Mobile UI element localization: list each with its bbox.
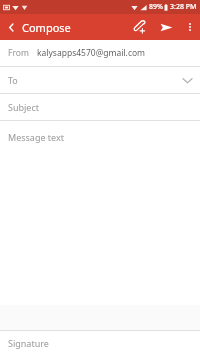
staticText: kalysapps4570@gmail.com: [37, 47, 146, 59]
staticText: Signature: [8, 337, 49, 349]
button[interactable]: Send: [152, 14, 180, 40]
staticText: Compose: [22, 20, 71, 35]
staticText: From: [8, 47, 29, 59]
button[interactable]: From: [0, 40, 200, 66]
button[interactable]: Signature: [0, 331, 200, 355]
staticText: To: [8, 74, 18, 86]
button[interactable]: More options: [180, 14, 200, 40]
staticText: 89%: [149, 2, 163, 12]
staticText: Subject: [8, 101, 40, 113]
button[interactable]: Expand recipients: [180, 73, 194, 87]
button[interactable]: To: [0, 67, 200, 93]
button[interactable]: Back: [0, 14, 22, 40]
staticText: Message text: [8, 131, 65, 143]
button[interactable]: Subject: [0, 94, 200, 120]
staticText: 3:28 PM: [170, 2, 197, 12]
button[interactable]: Message text: [0, 121, 200, 305]
button[interactable]: Attach file: [126, 14, 152, 40]
